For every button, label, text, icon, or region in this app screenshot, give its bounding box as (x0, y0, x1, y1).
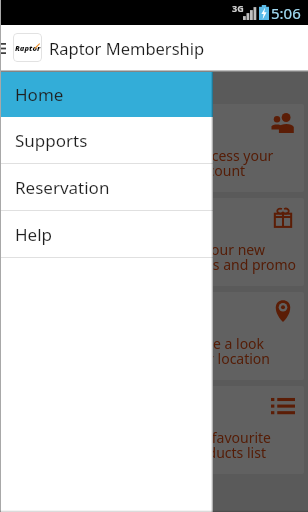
staticText: See our new (184, 240, 265, 259)
staticText: Home (15, 83, 64, 106)
staticText: offers and promo (181, 255, 297, 274)
staticText: Supports (15, 129, 88, 152)
staticText: account (193, 161, 246, 180)
button[interactable]: See our new (5, 198, 304, 286)
staticText: Your favourite (178, 428, 272, 447)
staticText: products list (185, 443, 266, 462)
staticText: Raptor Membership (49, 37, 205, 59)
button[interactable]: Supports (0, 117, 213, 164)
button[interactable]: Access your (5, 104, 304, 192)
button[interactable]: Reservation (0, 164, 213, 211)
staticText: Help (15, 223, 53, 246)
button[interactable]: Open navigation drawer (0, 25, 7, 72)
staticText: our location (191, 349, 270, 368)
staticText: 5:06 (271, 3, 301, 23)
button[interactable]: Take a look (5, 292, 304, 380)
staticText: Reservation (15, 176, 110, 199)
staticText: Take a look (191, 334, 265, 353)
staticText: Access your (196, 146, 274, 165)
button[interactable]: Home (0, 72, 213, 117)
button[interactable]: Help (0, 211, 213, 258)
staticText: Raptor (15, 43, 41, 53)
staticText: 3G (232, 2, 244, 14)
button[interactable]: Your favourite (5, 386, 304, 474)
